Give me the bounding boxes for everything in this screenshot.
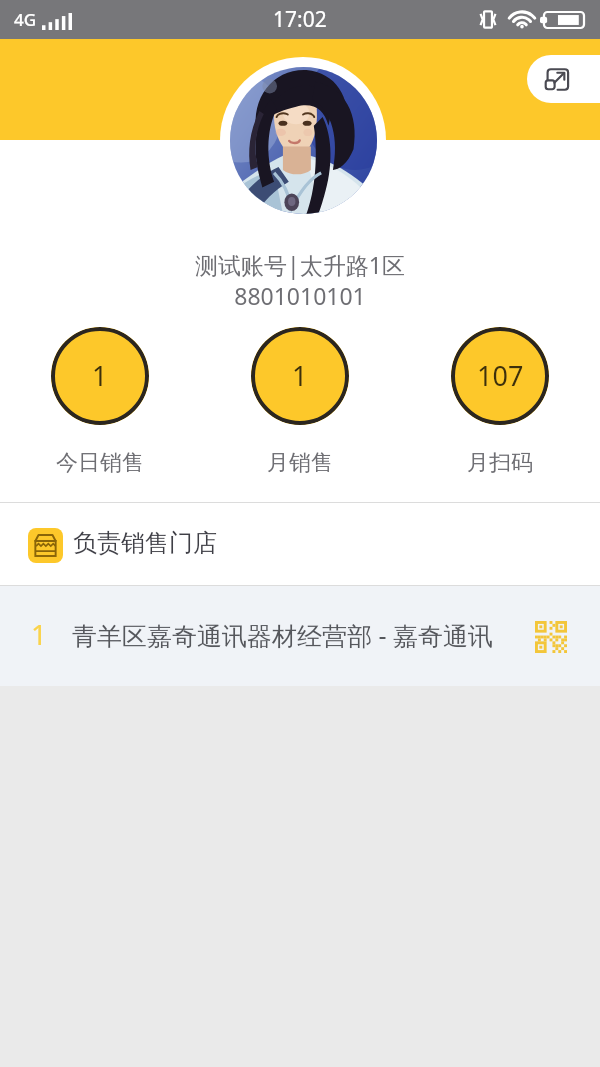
staticText: 负责销售门店 (73, 528, 217, 558)
staticText: 今日销售 (56, 449, 144, 477)
staticText: 月销售 (267, 449, 333, 477)
staticText: 1 (92, 357, 108, 394)
staticText: 青羊区嘉奇通讯器材经营部 - 嘉奇通讯 (72, 618, 494, 652)
staticText: 8801010101 (0, 280, 600, 311)
staticText: 17:02 (273, 5, 327, 34)
button[interactable]: 1 (51, 327, 149, 425)
staticText: 1 (31, 615, 48, 653)
staticText: 4G (14, 8, 37, 31)
button[interactable]: Share (527, 55, 600, 103)
staticText: 月扫码 (467, 449, 533, 477)
button[interactable]: 107 (451, 327, 549, 425)
staticText: 1 (292, 357, 308, 394)
button[interactable]: 1 (0, 586, 600, 686)
staticText: 测试账号|太升路1区 (0, 249, 600, 280)
button[interactable]: 1 (251, 327, 349, 425)
button[interactable]: 负责销售门店 (0, 503, 600, 585)
staticText: 107 (477, 357, 524, 394)
